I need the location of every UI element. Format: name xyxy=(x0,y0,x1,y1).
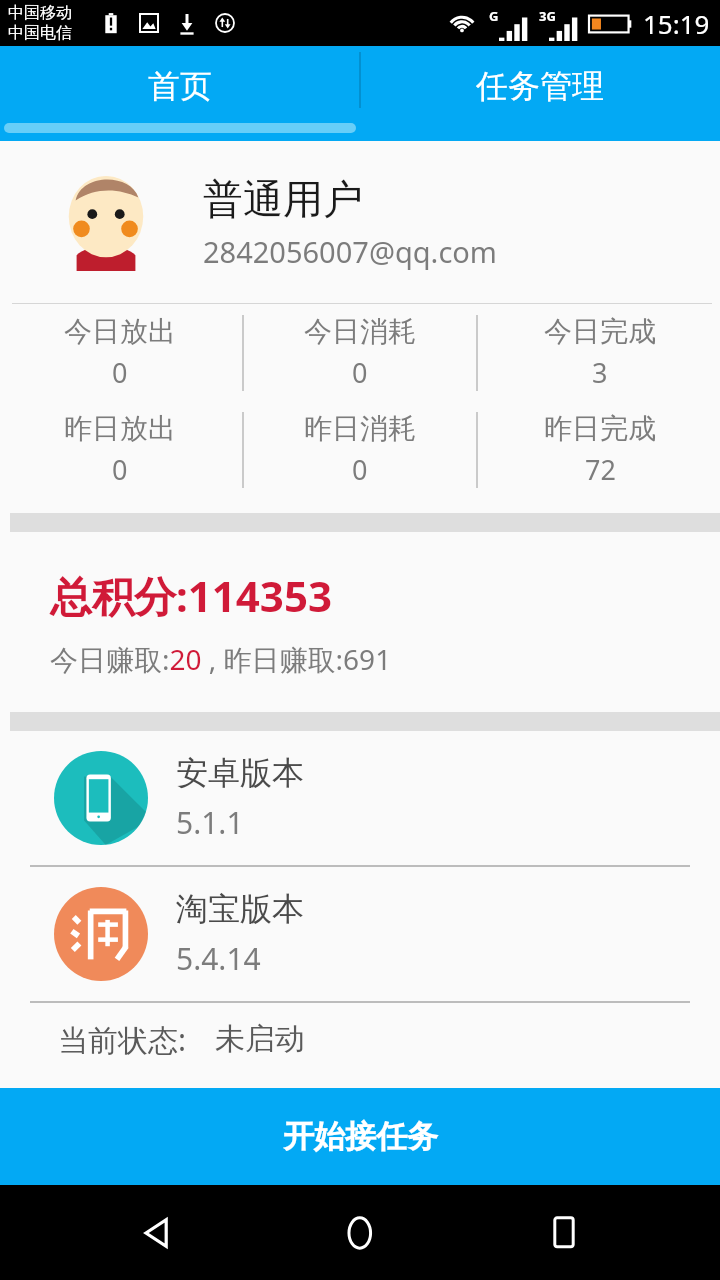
staticText: 2842056007@qq.com xyxy=(203,232,497,271)
staticText: 15:19 xyxy=(643,6,710,41)
button[interactable]: 昨日完成 xyxy=(480,401,720,498)
staticText: 开始接任务 xyxy=(283,1117,438,1156)
button[interactable]: 淘宝版本 xyxy=(0,867,720,1001)
staticText: 0 xyxy=(352,451,368,488)
staticText: 总积分:114353 xyxy=(50,567,332,624)
button[interactable]: 普通用户 xyxy=(0,141,720,303)
button[interactable]: 首页 xyxy=(0,46,360,141)
staticText: 0 xyxy=(112,451,128,488)
staticText: 普通用户 xyxy=(203,174,363,224)
staticText: 昨日放出 xyxy=(64,411,176,446)
staticText: 0 xyxy=(352,354,368,391)
staticText: G xyxy=(489,7,499,25)
staticText: 未启动 xyxy=(215,1020,305,1058)
button[interactable]: 总积分:114353 xyxy=(0,532,720,712)
button[interactable]: Back xyxy=(110,1186,204,1280)
button[interactable]: 当前状态: xyxy=(0,1003,720,1075)
staticText: 昨日完成 xyxy=(544,411,656,446)
button[interactable]: Home xyxy=(313,1186,407,1280)
staticText: 中国移动 xyxy=(8,3,72,23)
button[interactable]: 昨日放出 xyxy=(0,401,240,498)
staticText: 3 xyxy=(592,354,608,391)
button[interactable]: 今日完成 xyxy=(480,304,720,401)
staticText: 5.4.14 xyxy=(176,938,261,979)
button[interactable]: 昨日消耗 xyxy=(240,401,480,498)
button[interactable]: Recent apps xyxy=(517,1186,611,1280)
staticText: 今日消耗 xyxy=(304,314,416,349)
staticText: 今日放出 xyxy=(64,314,176,349)
button[interactable]: 任务管理 xyxy=(360,46,720,141)
staticText: 任务管理 xyxy=(476,66,604,106)
staticText: 首页 xyxy=(148,66,212,106)
staticText: 今日赚取:20 , 昨日赚取:691 xyxy=(50,640,392,678)
staticText: 3G xyxy=(539,7,556,25)
button[interactable]: 今日消耗 xyxy=(240,304,480,401)
staticText: 今日完成 xyxy=(544,314,656,349)
button[interactable]: 开始接任务 xyxy=(0,1088,720,1185)
staticText: 安卓版本 xyxy=(176,753,304,793)
staticText: 72 xyxy=(585,451,616,488)
button[interactable]: 今日放出 xyxy=(0,304,240,401)
staticText: 5.1.1 xyxy=(176,802,244,843)
staticText: 淘宝版本 xyxy=(176,889,304,929)
staticText: 昨日消耗 xyxy=(304,411,416,446)
staticText: 当前状态: xyxy=(58,1019,187,1060)
button[interactable]: 安卓版本 xyxy=(0,731,720,865)
staticText: 0 xyxy=(112,354,128,391)
staticText: 中国电信 xyxy=(8,23,72,43)
